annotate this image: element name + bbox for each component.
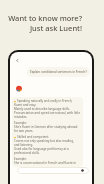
button[interactable]: Message input [17,167,89,174]
staticText: and listening. [14,143,34,147]
button[interactable]: Explain conditional sentences in French? [30,70,87,74]
staticText: professional skills. [14,151,40,155]
staticText: Explain conditional sentences in French? [30,70,87,74]
button[interactable]: Speaking naturally and orally in French, [14,99,81,165]
staticText: Skilled and competent. [17,135,50,139]
staticText: mistakes. [14,115,28,119]
staticText: Covers not only speaking but also readin… [14,139,81,143]
staticText: for two years. [14,129,34,133]
staticText: Example: [14,121,27,125]
staticText: She is conversational in French and flue… [14,161,77,165]
staticText: Example: [14,157,27,161]
staticText: Want to know more? [2,13,82,23]
staticText: Mainly used to describe language skills. [14,107,70,111]
staticText: She's fluent in German after studying ab… [14,125,78,129]
staticText: fluent and easy. [14,103,37,107]
staticText: Used also for language proficiency at a [14,147,69,151]
staticText: Pronunciation and speed are natural, wit… [14,111,81,115]
button[interactable]: Back [14,57,21,64]
staticText: Speaking naturally and orally in French, [17,99,73,103]
staticText: Just ask Luent! [2,23,82,33]
